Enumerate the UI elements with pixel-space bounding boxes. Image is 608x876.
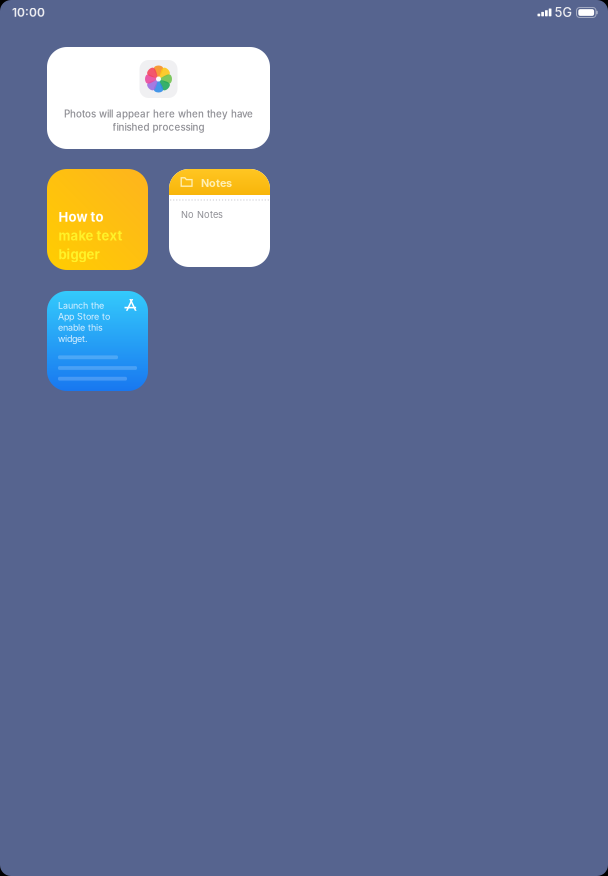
staticText: finished processing — [112, 121, 204, 133]
staticText: How to — [58, 209, 103, 225]
button[interactable]: Notes — [169, 169, 270, 267]
button[interactable]: Launch the — [47, 291, 148, 391]
staticText: No Notes — [181, 209, 223, 220]
button[interactable]: How to — [47, 169, 148, 270]
button[interactable]: Photos will appear here when they have — [47, 47, 270, 149]
staticText: Launch the — [58, 300, 104, 311]
staticText: App Store to — [58, 311, 110, 322]
staticText: Photos will appear here when they have — [64, 108, 253, 120]
staticText: 10:00 — [12, 5, 45, 20]
staticText: Notes — [201, 176, 232, 190]
staticText: bigger — [58, 247, 99, 262]
staticText: make text — [58, 228, 122, 244]
staticText: enable this — [58, 322, 103, 333]
staticText: 5G — [554, 5, 571, 20]
staticText: widget. — [58, 333, 88, 344]
